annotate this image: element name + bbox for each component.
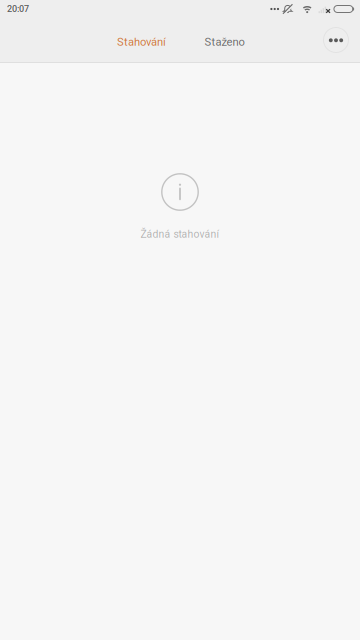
button[interactable]: Stahování: [97, 21, 186, 63]
button[interactable]: More options: [315, 19, 357, 61]
staticText: Žádná stahování: [140, 228, 219, 240]
staticText: Staženo: [204, 35, 244, 48]
staticText: 20:07: [7, 4, 29, 14]
button[interactable]: Staženo: [186, 21, 263, 63]
staticText: Stahování: [117, 35, 166, 48]
